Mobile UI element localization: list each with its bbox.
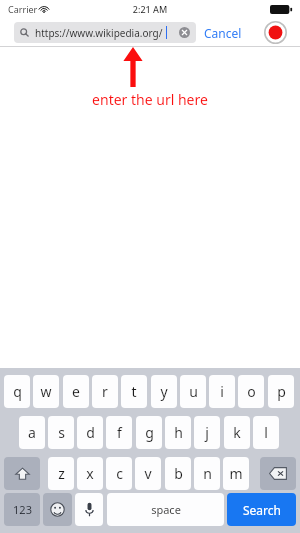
button[interactable]: Clear text xyxy=(179,27,190,38)
staticText: h xyxy=(174,423,183,442)
button[interactable]: Shift xyxy=(4,457,40,490)
staticText: w xyxy=(40,382,52,401)
button[interactable]: s xyxy=(48,416,74,449)
staticText: 123 xyxy=(13,502,32,517)
button[interactable]: r xyxy=(92,375,118,408)
button[interactable]: i xyxy=(209,375,235,408)
staticText: s xyxy=(58,423,65,442)
staticText: enter the url here xyxy=(0,90,300,109)
button[interactable]: l xyxy=(253,416,279,449)
staticText: g xyxy=(145,423,154,442)
button[interactable]: x xyxy=(77,457,103,490)
staticText: v xyxy=(144,464,152,483)
button[interactable]: q xyxy=(4,375,30,408)
staticText: f xyxy=(117,423,122,442)
staticText: 2:21 AM xyxy=(0,3,300,15)
staticText: Carrier xyxy=(8,3,38,15)
button[interactable]: p xyxy=(268,375,294,408)
button[interactable]: space xyxy=(107,493,224,526)
staticText: d xyxy=(86,423,95,442)
button[interactable]: o xyxy=(238,375,264,408)
staticText: q xyxy=(13,382,22,401)
button[interactable]: e xyxy=(63,375,89,408)
button[interactable]: m xyxy=(223,457,249,490)
button[interactable]: k xyxy=(224,416,250,449)
button[interactable]: g xyxy=(136,416,162,449)
staticText: space xyxy=(151,502,181,517)
button[interactable]: j xyxy=(194,416,220,449)
button[interactable]: Record xyxy=(264,21,287,44)
button[interactable]: a xyxy=(19,416,45,449)
button[interactable]: t xyxy=(121,375,147,408)
staticText: c xyxy=(116,464,123,483)
button[interactable]: Search xyxy=(227,493,296,526)
staticText: b xyxy=(174,464,183,483)
staticText: l xyxy=(264,423,268,442)
staticText: t xyxy=(131,382,137,401)
button[interactable]: Cancel xyxy=(200,22,246,43)
staticText: n xyxy=(203,464,212,483)
button[interactable]: n xyxy=(194,457,220,490)
staticText: i xyxy=(220,382,224,401)
staticText: u xyxy=(189,382,198,401)
staticText: Cancel xyxy=(204,25,242,41)
staticText: j xyxy=(205,423,209,442)
staticText: z xyxy=(58,464,65,483)
button[interactable]: u xyxy=(180,375,206,408)
button[interactable]: b xyxy=(165,457,191,490)
button[interactable]: Emoji xyxy=(43,493,72,526)
staticText: r xyxy=(102,382,108,401)
button[interactable]: w xyxy=(33,375,59,408)
button[interactable]: Dictate xyxy=(75,493,103,526)
staticText: a xyxy=(28,423,36,442)
button[interactable]: d xyxy=(77,416,103,449)
staticText: k xyxy=(233,423,241,442)
button[interactable]: y xyxy=(151,375,177,408)
button[interactable]: h xyxy=(165,416,191,449)
staticText: y xyxy=(160,382,168,401)
button[interactable]: v xyxy=(135,457,161,490)
staticText: p xyxy=(277,382,286,401)
staticText: m xyxy=(229,464,243,483)
button[interactable]: c xyxy=(106,457,132,490)
staticText: Search xyxy=(243,502,281,518)
staticText: https://www.wikipedia.org/ xyxy=(35,26,163,40)
staticText: o xyxy=(247,382,256,401)
staticText: x xyxy=(86,464,94,483)
button[interactable]: f xyxy=(106,416,132,449)
button[interactable]: 123 xyxy=(4,493,40,526)
button[interactable]: z xyxy=(48,457,74,490)
button[interactable]: Backspace xyxy=(260,457,296,490)
button[interactable]: https://www.wikipedia.org/ xyxy=(14,22,196,43)
staticText: e xyxy=(72,382,80,401)
